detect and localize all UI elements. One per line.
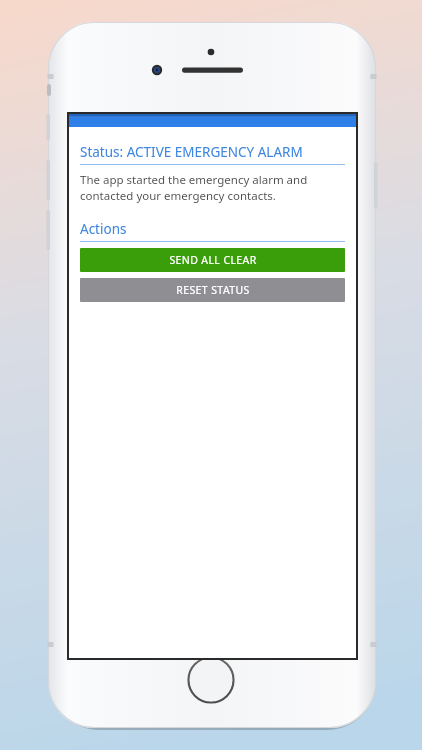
staticText: Status: ACTIVE EMERGENCY ALARM	[80, 143, 303, 161]
staticText: SEND ALL CLEAR	[169, 253, 257, 267]
button[interactable]: SEND ALL CLEAR	[80, 248, 345, 272]
staticText: RESET STATUS	[176, 283, 250, 297]
staticText: Actions	[80, 220, 127, 238]
button[interactable]: RESET STATUS	[80, 278, 345, 302]
staticText: The app started the emergency alarm and …	[80, 172, 345, 203]
